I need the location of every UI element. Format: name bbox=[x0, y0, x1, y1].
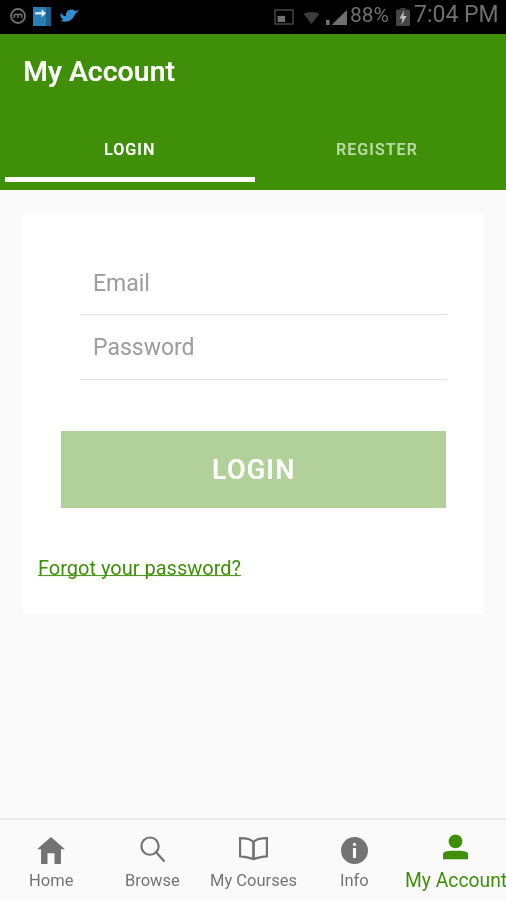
button[interactable]: My Courses bbox=[203, 820, 304, 900]
staticText: Browse bbox=[125, 871, 180, 890]
staticText: My Courses bbox=[210, 871, 297, 890]
staticText: REGISTER bbox=[336, 140, 418, 159]
button[interactable]: LOGIN bbox=[6, 140, 253, 159]
button[interactable]: Home bbox=[0, 820, 102, 900]
staticText: Info bbox=[340, 871, 369, 890]
button[interactable]: My Account bbox=[405, 820, 506, 900]
button[interactable]: Info bbox=[304, 820, 405, 900]
staticText: 7:04 PM bbox=[414, 1, 499, 28]
button[interactable]: LOGIN bbox=[61, 431, 446, 508]
staticText: Home bbox=[29, 871, 74, 890]
staticText: Forgot your password? bbox=[38, 556, 241, 579]
button[interactable]: REGISTER bbox=[253, 140, 501, 159]
staticText: LOGIN bbox=[104, 140, 156, 159]
staticText: Email bbox=[93, 270, 150, 297]
staticText: LOGIN bbox=[212, 454, 296, 486]
button[interactable]: Forgot your password? bbox=[38, 556, 241, 579]
staticText: My Account bbox=[23, 55, 175, 88]
staticText: 88% bbox=[350, 3, 389, 28]
staticText: Password bbox=[93, 334, 195, 361]
button[interactable]: Browse bbox=[102, 820, 203, 900]
staticText: My Account bbox=[405, 869, 506, 892]
